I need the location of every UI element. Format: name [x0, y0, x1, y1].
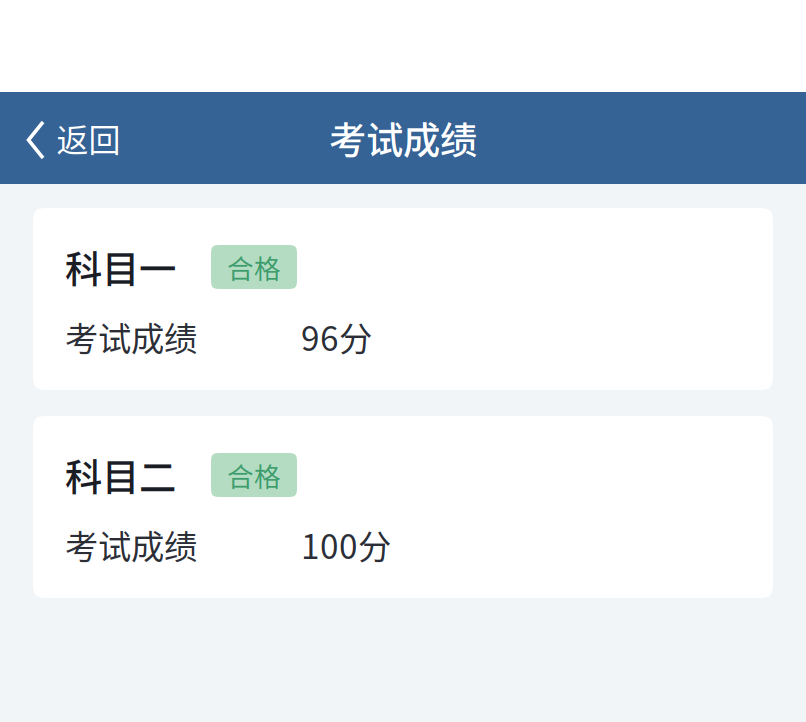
staticText: 合格	[227, 456, 281, 494]
staticText: 合格	[227, 248, 281, 286]
staticText: 科目二	[65, 448, 176, 502]
button[interactable]: 科目一	[33, 208, 773, 390]
staticText: 考试成绩	[65, 312, 197, 361]
staticText: 考试成绩	[65, 520, 197, 569]
staticText: 科目一	[65, 240, 176, 294]
button[interactable]: 科目二	[33, 416, 773, 598]
staticText: 96分	[301, 312, 372, 361]
button[interactable]: 返回	[0, 100, 140, 176]
staticText: 考试成绩	[329, 111, 477, 165]
staticText: 返回	[56, 115, 120, 161]
staticText: 100分	[301, 520, 391, 569]
